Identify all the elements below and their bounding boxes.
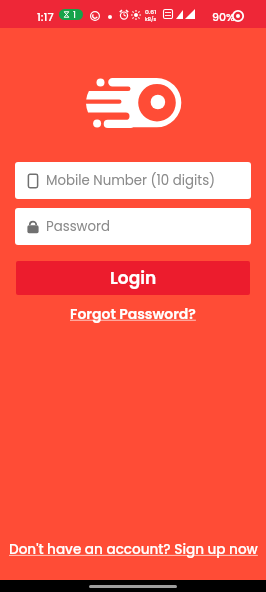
staticText: Don't have an account? Sign up now xyxy=(9,540,258,559)
button[interactable]: Password xyxy=(15,208,251,245)
staticText: 1 xyxy=(73,10,76,20)
staticText: 0.61 xyxy=(145,8,157,16)
button[interactable]: Login xyxy=(16,261,250,295)
staticText: 90% xyxy=(212,9,235,24)
staticText: Login xyxy=(110,266,157,290)
button[interactable]: Forgot Password? xyxy=(62,301,204,327)
button[interactable]: Don't have an account? Sign up now xyxy=(3,537,264,562)
button[interactable]: Mobile Number (10 digits) xyxy=(15,162,251,199)
staticText: kB/s xyxy=(145,16,157,23)
staticText: Password xyxy=(46,217,110,236)
staticText: Forgot Password? xyxy=(70,304,196,324)
staticText: Mobile Number (10 digits) xyxy=(46,171,216,190)
staticText: 1:17 xyxy=(37,9,54,24)
